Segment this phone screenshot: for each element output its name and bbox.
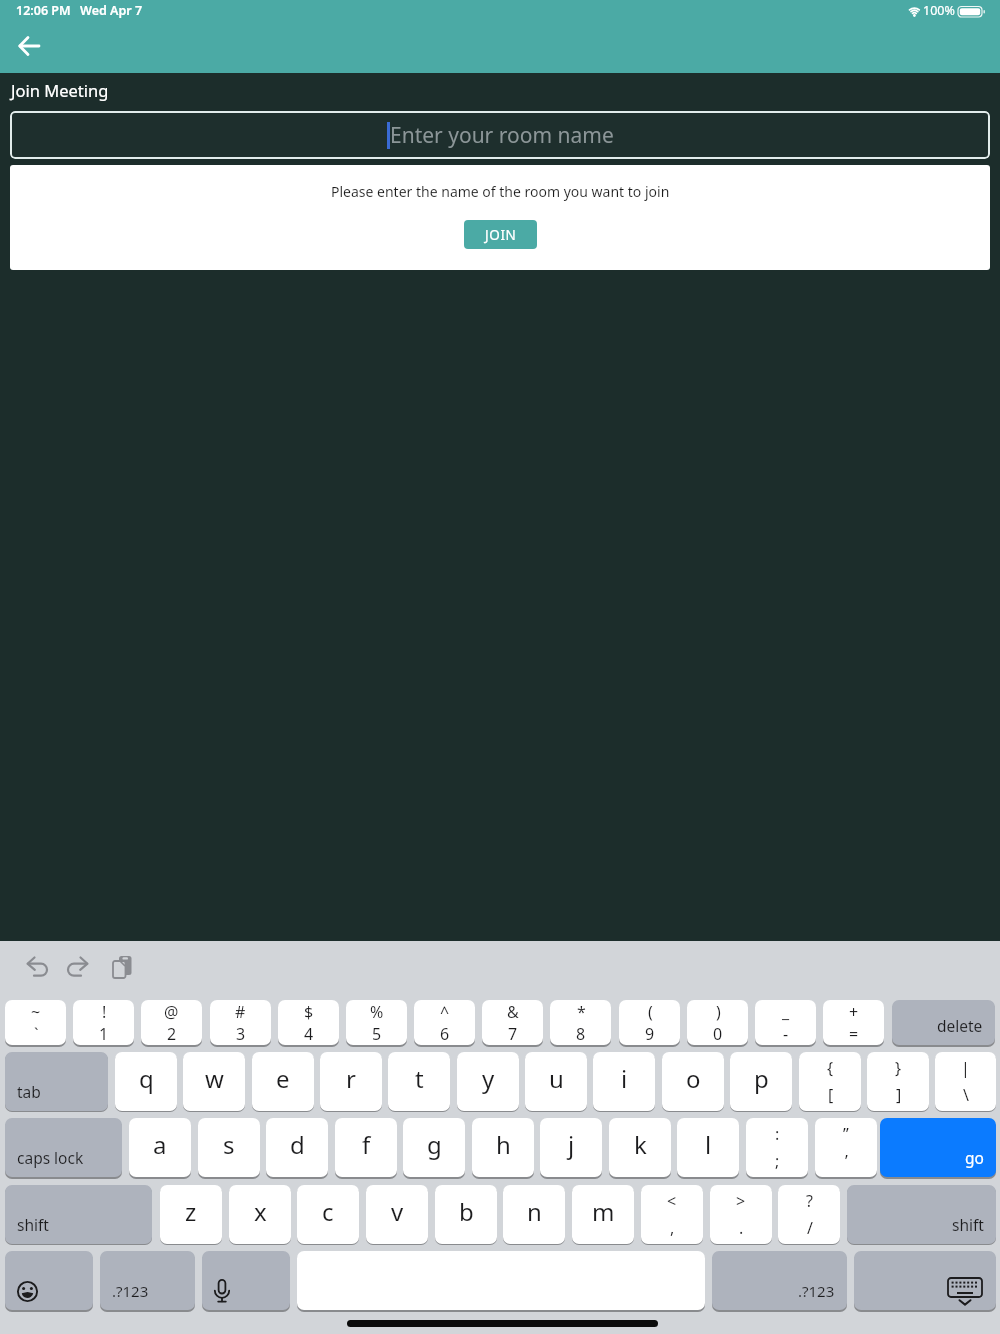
button[interactable]: f: [335, 1118, 397, 1177]
staticText: d: [290, 1128, 305, 1161]
button[interactable]: #: [210, 1000, 271, 1045]
button[interactable]: s: [198, 1118, 260, 1177]
button[interactable]: e: [252, 1052, 314, 1111]
button[interactable]: .?123: [100, 1251, 195, 1310]
button[interactable]: j: [540, 1118, 602, 1177]
button[interactable]: q: [115, 1052, 177, 1111]
button[interactable]: i: [593, 1052, 655, 1111]
button[interactable]: |: [935, 1052, 996, 1111]
staticText: 12:06 PM: [16, 2, 71, 19]
button[interactable]: n: [503, 1185, 565, 1244]
button[interactable]: shift: [847, 1185, 996, 1244]
button[interactable]: *: [550, 1000, 611, 1045]
staticText: ^: [440, 1001, 450, 1023]
button[interactable]: !: [73, 1000, 134, 1045]
staticText: ): [716, 1001, 721, 1023]
button[interactable]: ^: [414, 1000, 475, 1045]
staticText: q: [139, 1062, 154, 1095]
staticText: j: [568, 1128, 575, 1161]
staticText: x: [254, 1195, 267, 1228]
staticText: \: [963, 1084, 969, 1106]
button[interactable]: [5, 1251, 93, 1310]
staticText: :: [775, 1123, 780, 1145]
staticText: v: [391, 1195, 404, 1228]
button[interactable]: JOIN: [464, 220, 537, 249]
button[interactable]: %: [346, 1000, 407, 1045]
button[interactable]: .?123: [712, 1251, 847, 1310]
staticText: w: [205, 1062, 224, 1095]
staticText: ’: [845, 1150, 848, 1172]
button[interactable]: delete: [892, 1000, 995, 1045]
button[interactable]: z: [160, 1185, 222, 1244]
button[interactable]: k: [609, 1118, 671, 1177]
staticText: }: [895, 1057, 902, 1079]
staticText: shift: [952, 1214, 984, 1235]
button[interactable]: caps lock: [5, 1118, 122, 1177]
staticText: 2: [167, 1023, 177, 1045]
button[interactable]: [202, 1251, 290, 1310]
button[interactable]: ?: [778, 1185, 840, 1244]
button[interactable]: Enter your room name: [10, 111, 990, 159]
staticText: @: [164, 1001, 179, 1023]
button[interactable]: g: [403, 1118, 465, 1177]
staticText: $: [304, 1001, 314, 1023]
button[interactable]: l: [677, 1118, 739, 1177]
button[interactable]: {: [799, 1052, 861, 1111]
button[interactable]: o: [662, 1052, 724, 1111]
button[interactable]: c: [297, 1185, 359, 1244]
button[interactable]: w: [183, 1052, 245, 1111]
staticText: delete: [937, 1015, 983, 1036]
staticText: u: [549, 1062, 564, 1095]
button[interactable]: m: [572, 1185, 634, 1244]
button[interactable]: b: [435, 1185, 497, 1244]
button[interactable]: go: [880, 1118, 996, 1177]
button[interactable]: [854, 1251, 996, 1310]
button[interactable]: v: [366, 1185, 428, 1244]
button[interactable]: ): [687, 1000, 748, 1045]
staticText: ”: [843, 1123, 849, 1145]
button[interactable]: <: [641, 1185, 703, 1244]
button[interactable]: [8, 33, 48, 61]
staticText: 3: [236, 1023, 246, 1045]
staticText: i: [621, 1062, 628, 1095]
button[interactable]: @: [141, 1000, 202, 1045]
staticText: `: [34, 1023, 39, 1045]
staticText: &: [507, 1001, 519, 1023]
button[interactable]: }: [867, 1052, 929, 1111]
staticText: 1: [99, 1023, 109, 1045]
button[interactable]: $: [278, 1000, 339, 1045]
button[interactable]: y: [457, 1052, 519, 1111]
staticText: g: [427, 1128, 442, 1161]
staticText: s: [223, 1128, 235, 1161]
staticText: o: [686, 1062, 701, 1095]
staticText: go: [965, 1147, 984, 1168]
staticText: tab: [17, 1081, 41, 1102]
button[interactable]: d: [266, 1118, 328, 1177]
button[interactable]: a: [129, 1118, 191, 1177]
button[interactable]: _: [755, 1000, 816, 1045]
button[interactable]: x: [229, 1185, 291, 1244]
button[interactable]: (: [619, 1000, 680, 1045]
button[interactable]: u: [525, 1052, 587, 1111]
button[interactable]: t: [388, 1052, 450, 1111]
button[interactable]: shift: [5, 1185, 152, 1244]
button[interactable]: ~: [5, 1000, 66, 1045]
button[interactable]: &: [482, 1000, 543, 1045]
button[interactable]: +: [823, 1000, 884, 1045]
staticText: Please enter the name of the room you wa…: [331, 182, 670, 201]
button[interactable]: r: [320, 1052, 382, 1111]
staticText: JOIN: [485, 226, 517, 244]
staticText: 6: [440, 1023, 450, 1045]
button[interactable]: ”: [815, 1118, 877, 1177]
button[interactable]: tab: [5, 1052, 108, 1111]
staticText: ,: [670, 1217, 675, 1239]
button[interactable]: p: [730, 1052, 792, 1111]
staticText: m: [592, 1195, 615, 1228]
button[interactable]: h: [472, 1118, 534, 1177]
staticText: _: [782, 1001, 790, 1023]
staticText: [: [828, 1084, 834, 1106]
staticText: *: [577, 1001, 586, 1023]
button[interactable]: >: [710, 1185, 772, 1244]
button[interactable]: :: [746, 1118, 808, 1177]
